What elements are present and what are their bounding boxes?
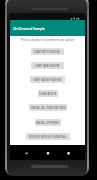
staticText: START NATIVE FEATURE (33, 78, 62, 82)
staticText: START JAVA FEATURE (35, 64, 60, 68)
button[interactable]: INSTALL ALL FEATURES NOW (29, 104, 67, 111)
staticText: INSTALL DEFERRED (36, 121, 60, 125)
button[interactable]: START NATIVE FEATURE (30, 76, 65, 83)
staticText: SHOW ASSETS (39, 92, 57, 96)
button[interactable]: START JAVA FEATURE (31, 62, 64, 69)
staticText: On Demand Sample (13, 26, 45, 31)
staticText: REQUEST MODULE UNINSTALL (29, 135, 67, 139)
button[interactable]: START WITH FEATURE (31, 48, 64, 55)
staticText: INSTALL ALL FEATURES NOW (31, 106, 66, 110)
button[interactable]: REQUEST MODULE UNINSTALL (26, 133, 70, 140)
button[interactable]: INSTALL DEFERRED (35, 119, 61, 126)
staticText: Press a button to perform an action (10, 38, 85, 42)
staticText: START WITH FEATURE (34, 50, 61, 54)
other: System navigation (10, 145, 85, 160)
button[interactable]: SHOW ASSETS (38, 90, 58, 97)
